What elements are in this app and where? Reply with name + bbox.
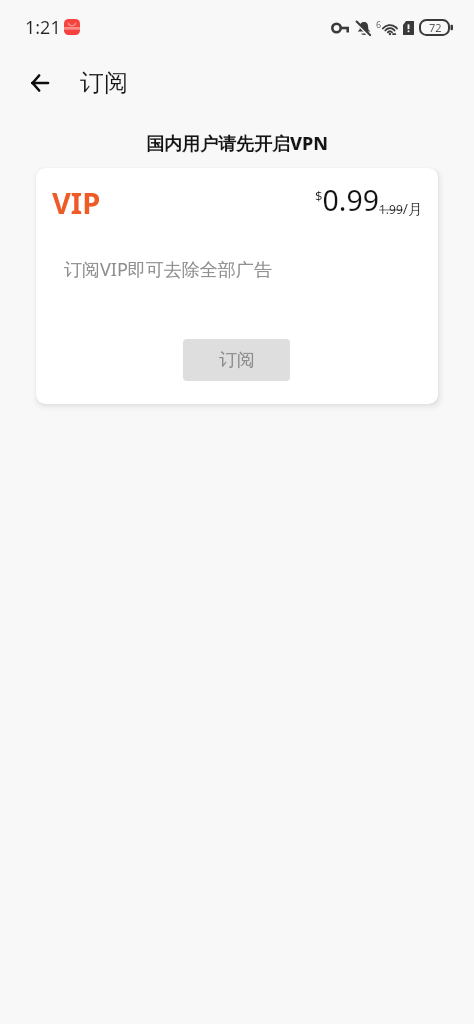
staticText: 订阅VIP即可去除全部广告	[64, 257, 272, 282]
staticText: VIP	[52, 183, 101, 222]
staticText: 1:21	[25, 15, 61, 40]
staticText: 6	[376, 18, 382, 30]
staticText: $0.99	[315, 181, 379, 220]
staticText: 72	[429, 20, 442, 35]
button[interactable]: VIP	[36, 168, 438, 404]
staticText: 订阅	[80, 68, 128, 98]
staticText: 1.99/月	[379, 199, 423, 218]
button[interactable]: Back	[17, 61, 61, 105]
button[interactable]: 订阅	[183, 339, 290, 381]
staticText: 国内用户请先开启VPN	[0, 131, 474, 156]
staticText: 订阅	[219, 349, 255, 372]
